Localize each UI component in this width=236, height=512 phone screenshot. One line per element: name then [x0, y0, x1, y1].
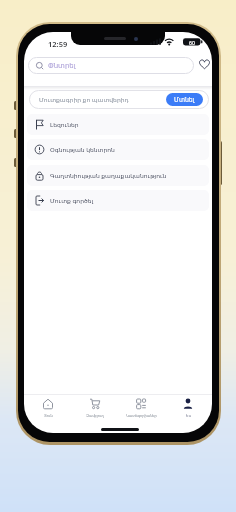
staticText: Ես [186, 414, 191, 418]
staticText: Լեզուներ [50, 121, 79, 128]
staticText: Փնտրել [48, 62, 76, 70]
staticText: Մուտքագրիր քո պատվերիդ [39, 96, 129, 104]
staticText: Օգնության կենտրոն [50, 146, 115, 154]
staticText: Գաղտնիության քաղաքականություն [50, 172, 167, 180]
staticText: 12:59 [48, 39, 68, 49]
staticText: Կատեգորիաներ [126, 414, 157, 418]
staticText: Զամբյուղ [86, 414, 104, 418]
staticText: Տուն [44, 414, 53, 418]
staticText: 60 [189, 39, 195, 46]
staticText: Մուտք գործել [50, 197, 94, 205]
staticText: Մտնել [174, 96, 195, 103]
